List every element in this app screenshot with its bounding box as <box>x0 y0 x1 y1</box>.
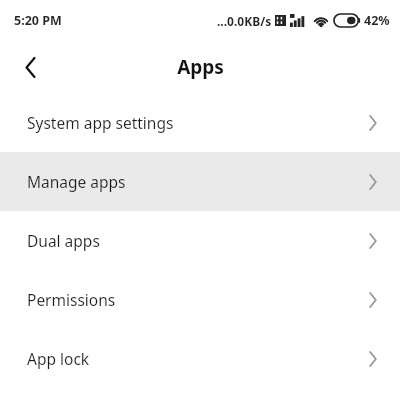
staticText: Apps <box>177 54 224 80</box>
button[interactable]: Dual apps <box>0 211 400 270</box>
button[interactable]: System app settings <box>0 93 400 152</box>
button[interactable]: Back <box>7 44 53 90</box>
button[interactable]: Permissions <box>0 270 400 329</box>
staticText: 42% <box>364 12 390 29</box>
staticText: System app settings <box>27 112 174 133</box>
staticText: Manage apps <box>27 171 126 192</box>
button[interactable]: App lock <box>0 329 400 388</box>
staticText: 5:20 PM <box>14 12 62 29</box>
staticText: Permissions <box>27 289 116 310</box>
staticText: App lock <box>27 348 90 369</box>
staticText: Dual apps <box>27 230 100 251</box>
button[interactable]: Manage apps <box>0 152 400 211</box>
staticText: ...0.0KB/s <box>217 13 272 29</box>
